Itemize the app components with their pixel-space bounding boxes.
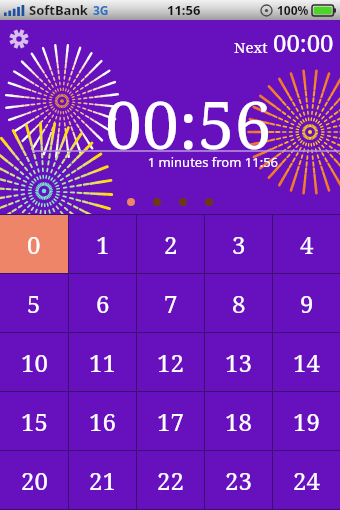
button[interactable] — [153, 198, 161, 206]
staticText: 0 — [27, 228, 41, 261]
staticText: 11:56 — [167, 1, 201, 19]
button[interactable] — [127, 198, 135, 206]
button[interactable]: 22 — [137, 451, 204, 509]
staticText: 1 — [96, 228, 110, 261]
staticText: 20 — [21, 464, 48, 497]
button[interactable]: 17 — [137, 392, 204, 450]
staticText: SoftBank — [29, 1, 88, 19]
staticText: 15 — [21, 405, 48, 438]
button[interactable]: 24 — [273, 451, 340, 509]
button[interactable]: 12 — [137, 333, 204, 391]
staticText: 19 — [293, 405, 320, 438]
button[interactable]: 20 — [0, 451, 68, 509]
staticText: 7 — [164, 287, 178, 320]
staticText: 8 — [232, 287, 246, 320]
staticText: 22 — [157, 464, 184, 497]
button[interactable]: 11 — [69, 333, 136, 391]
button[interactable]: 14 — [273, 333, 340, 391]
button[interactable]: 1 — [69, 215, 136, 273]
staticText: 23 — [225, 464, 252, 497]
button[interactable]: Next — [234, 26, 334, 59]
staticText: 21 — [89, 464, 116, 497]
button[interactable]: 3 — [205, 215, 272, 273]
staticText: 5 — [27, 287, 41, 320]
staticText: 3G — [93, 2, 109, 18]
staticText: 3 — [232, 228, 246, 261]
staticText: 00:56 — [105, 78, 272, 168]
staticText: 2 — [164, 228, 178, 261]
button[interactable]: 0 — [0, 215, 68, 273]
button[interactable]: 15 — [0, 392, 68, 450]
staticText: 00:00 — [273, 26, 334, 59]
button[interactable]: 5 — [0, 274, 68, 332]
button[interactable] — [205, 198, 213, 206]
button[interactable]: 21 — [69, 451, 136, 509]
button[interactable]: 6 — [69, 274, 136, 332]
button[interactable]: 16 — [69, 392, 136, 450]
staticText: 16 — [89, 405, 116, 438]
staticText: 14 — [293, 346, 320, 379]
staticText: 10 — [21, 346, 48, 379]
staticText: 6 — [96, 287, 110, 320]
button[interactable]: 18 — [205, 392, 272, 450]
staticText: 11 — [89, 346, 116, 379]
button[interactable]: 19 — [273, 392, 340, 450]
button[interactable]: 9 — [273, 274, 340, 332]
button[interactable]: 23 — [205, 451, 272, 509]
staticText: 18 — [225, 405, 252, 438]
button[interactable]: 4 — [273, 215, 340, 273]
button[interactable]: Settings — [6, 26, 32, 52]
staticText: 9 — [300, 287, 314, 320]
staticText: 13 — [225, 346, 252, 379]
button[interactable]: 2 — [137, 215, 204, 273]
staticText: 4 — [300, 228, 314, 261]
button[interactable]: 8 — [205, 274, 272, 332]
staticText: 12 — [157, 346, 184, 379]
staticText: 100% — [277, 2, 309, 18]
button[interactable]: 7 — [137, 274, 204, 332]
button[interactable]: 13 — [205, 333, 272, 391]
staticText: 17 — [157, 405, 184, 438]
staticText: 24 — [293, 464, 320, 497]
staticText: Next — [234, 37, 268, 57]
button[interactable]: 10 — [0, 333, 68, 391]
button[interactable] — [179, 198, 187, 206]
staticText: 1 minutes from 11:56 — [147, 153, 278, 171]
